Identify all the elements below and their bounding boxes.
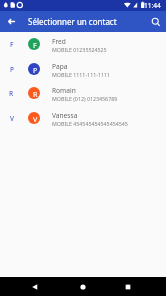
staticText: MOBILE 1111-111-1111: [52, 71, 111, 78]
button[interactable]: Home: [75, 279, 91, 295]
staticText: MOBILE 01235524525: [52, 46, 107, 53]
staticText: 11:44: [144, 1, 161, 10]
button[interactable]: Back: [27, 279, 43, 295]
staticText: Fred: [52, 37, 66, 46]
button[interactable]: Back: [0, 11, 21, 32]
staticText: Vanessa: [52, 111, 78, 120]
staticText: Romain: [52, 86, 76, 95]
staticText: Papa: [52, 62, 68, 71]
staticText: F: [33, 40, 37, 50]
staticText: F: [10, 40, 14, 49]
staticText: V: [33, 114, 38, 124]
button[interactable]: F: [0, 32, 166, 56]
button[interactable]: R: [0, 81, 166, 105]
button[interactable]: Recents: [120, 279, 136, 295]
staticText: MOBILE 454545454545454545: [52, 120, 128, 127]
staticText: P: [33, 65, 38, 75]
staticText: Sélectionner un contact: [28, 16, 145, 27]
button[interactable]: Search: [145, 11, 166, 32]
staticText: P: [10, 65, 14, 74]
button[interactable]: P: [0, 57, 166, 81]
staticText: R: [33, 89, 38, 99]
staticText: R: [9, 89, 14, 98]
staticText: MOBILE (012) 0123456789: [52, 95, 118, 102]
button[interactable]: V: [0, 106, 166, 130]
staticText: V: [10, 114, 14, 123]
